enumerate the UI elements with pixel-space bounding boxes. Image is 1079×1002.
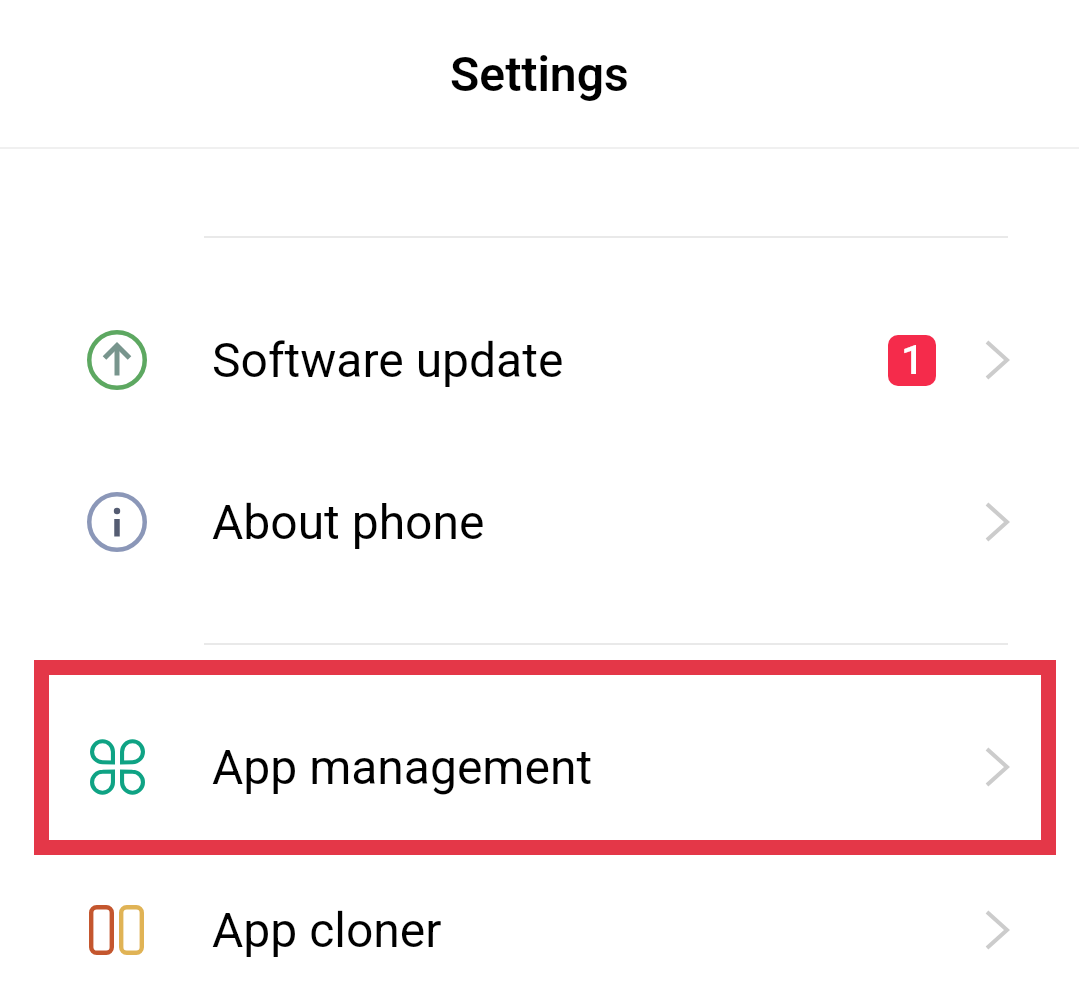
staticText: About phone	[212, 494, 485, 550]
other: Open App management	[985, 747, 1009, 787]
button[interactable]: About phone	[0, 447, 1079, 597]
other: Open About phone	[985, 502, 1009, 542]
button[interactable]: Software update	[0, 285, 1079, 435]
other: App management	[90, 739, 145, 795]
other: Software update	[87, 330, 147, 390]
other: About phone	[87, 492, 147, 552]
staticText: Settings	[450, 46, 629, 102]
other: App cloner	[89, 905, 145, 955]
other: Open App cloner	[985, 910, 1009, 950]
other: Open Software update	[985, 340, 1009, 380]
button[interactable]: App management	[0, 692, 1079, 842]
staticText: App cloner	[212, 902, 442, 958]
staticText: 1	[901, 337, 924, 384]
staticText: Software update	[212, 332, 564, 388]
button[interactable]: App cloner	[0, 855, 1079, 1002]
staticText: App management	[212, 739, 593, 795]
